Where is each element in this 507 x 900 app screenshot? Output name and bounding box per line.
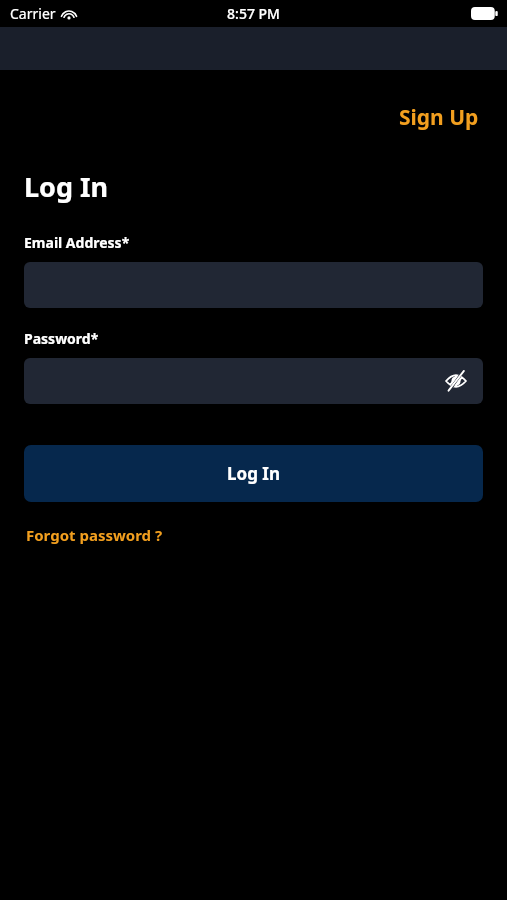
button[interactable]: Log In [24, 445, 483, 502]
staticText: Log In [227, 462, 280, 485]
staticText: Forgot password ? [26, 525, 163, 545]
staticText: Log In [24, 168, 109, 205]
button[interactable]: Forgot password ? [24, 522, 165, 548]
button[interactable]: Show password [24, 358, 483, 404]
staticText: Email Address* [24, 233, 130, 252]
staticText: Password* [24, 329, 99, 348]
staticText: Carrier [10, 4, 56, 23]
staticText: 8:57 PM [227, 4, 280, 23]
button[interactable]: Show password [441, 366, 471, 396]
staticText: Sign Up [399, 103, 479, 132]
button[interactable]: Sign Up [395, 100, 483, 135]
